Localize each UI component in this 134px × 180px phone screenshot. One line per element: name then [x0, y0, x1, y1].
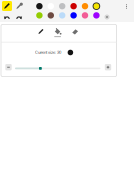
button[interactable]: Colour — [58, 11, 66, 19]
button[interactable]: Fill — [51, 24, 65, 41]
button[interactable]: Pen tool — [14, 1, 24, 11]
button[interactable]: Decrease size — [5, 64, 12, 70]
button[interactable]: Increase size — [105, 64, 111, 70]
button[interactable]: Colour — [70, 11, 78, 19]
button[interactable]: Pencil tool — [2, 1, 12, 11]
button[interactable]: Colour — [47, 11, 55, 19]
button[interactable]: Colour — [70, 2, 78, 10]
button[interactable]: Erase — [69, 24, 83, 41]
button[interactable]: Colour — [92, 2, 100, 10]
button[interactable]: Redo — [14, 12, 23, 21]
button[interactable]: Custom colour — [103, 13, 110, 20]
button[interactable]: Colour — [92, 11, 100, 19]
button[interactable]: Colour — [35, 11, 43, 19]
button[interactable]: Colour — [47, 2, 55, 10]
button[interactable]: Draw — [35, 24, 49, 41]
button[interactable]: Colour — [81, 2, 89, 10]
button[interactable]: Colour — [35, 2, 43, 10]
button[interactable]: Colour — [81, 11, 89, 19]
staticText: Current size: 30 — [35, 50, 61, 55]
button[interactable]: More options — [125, 4, 128, 9]
button[interactable]: Colour — [58, 2, 66, 10]
button[interactable]: Undo — [2, 12, 11, 21]
